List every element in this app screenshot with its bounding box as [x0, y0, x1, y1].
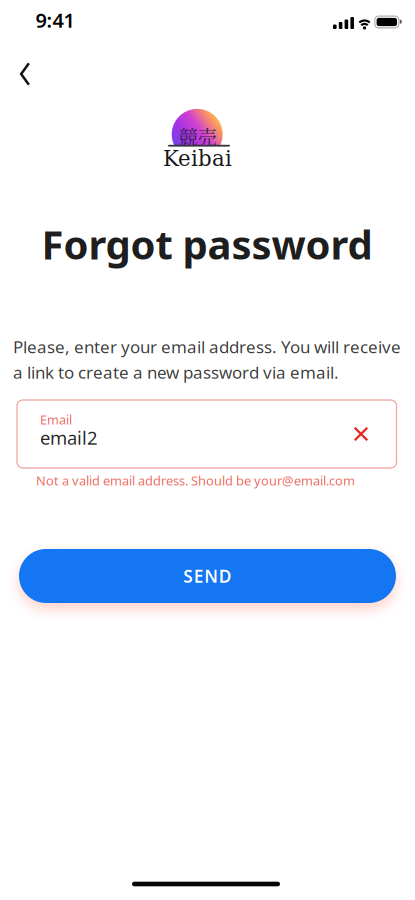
- staticText: 9:41: [35, 7, 74, 33]
- staticText: Not a valid email address. Should be you…: [36, 472, 355, 489]
- button[interactable]: Back: [11, 57, 39, 91]
- staticText: Forgot password: [41, 217, 372, 270]
- staticText: Keibai: [163, 146, 232, 171]
- staticText: SEND: [183, 564, 232, 587]
- staticText: email2: [40, 425, 98, 450]
- button[interactable]: Clear: [346, 419, 376, 449]
- staticText: Please, enter your email address. You wi…: [13, 335, 401, 358]
- staticText: Email: [40, 411, 72, 428]
- button[interactable]: SEND: [19, 549, 396, 603]
- button[interactable]: Email: [17, 400, 396, 468]
- staticText: 競売: [178, 122, 216, 150]
- staticText: a link to create a new password via emai…: [13, 361, 339, 384]
